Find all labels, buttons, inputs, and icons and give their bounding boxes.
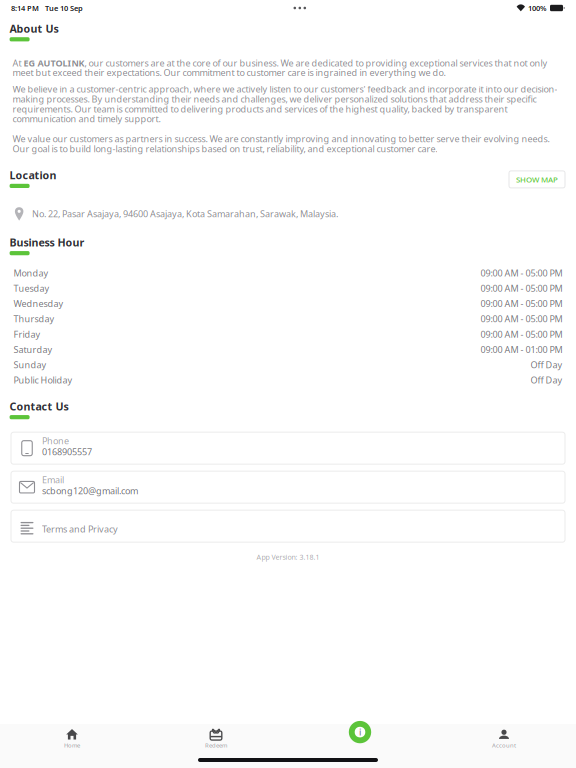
staticText: Tue 10 Sep: [39, 3, 83, 13]
staticText: Phone: [42, 434, 69, 447]
button[interactable]: Home: [0, 724, 144, 758]
staticText: 8:14 PM: [11, 3, 39, 13]
button[interactable]: Phone: [11, 432, 565, 464]
staticText: Contact Us: [10, 399, 69, 414]
staticText: No. 22, Pasar Asajaya, 94600 Asajaya, Ko…: [32, 208, 338, 220]
staticText: scbong120@gmail.com: [42, 485, 138, 497]
staticText: 100%: [528, 3, 547, 13]
staticText: Location: [10, 168, 57, 182]
button[interactable]: Terms and Privacy: [11, 510, 565, 542]
staticText: 0168905557: [42, 446, 92, 458]
button[interactable]: Email: [11, 471, 565, 503]
staticText: Friday: [13, 328, 40, 340]
staticText: Redeem: [205, 741, 227, 749]
staticText: Off Day: [530, 374, 562, 386]
staticText: Thursday: [13, 313, 54, 325]
staticText: SHOW MAP: [516, 174, 558, 185]
button[interactable]: Account: [432, 724, 576, 758]
staticText: Email: [42, 473, 64, 486]
staticText: Tuesday: [13, 282, 49, 294]
staticText: 09:00 AM - 05:00 PM: [480, 313, 562, 325]
staticText: Off Day: [530, 358, 562, 371]
staticText: 09:00 AM - 05:00 PM: [480, 297, 562, 310]
staticText: 09:00 AM - 05:00 PM: [480, 328, 562, 340]
staticText: 09:00 AM - 05:00 PM: [480, 282, 562, 294]
button[interactable]: Redeem: [144, 724, 288, 758]
staticText: 09:00 AM - 01:00 PM: [480, 343, 562, 355]
staticText: Terms and Privacy: [42, 523, 118, 535]
staticText: We value our customers as partners in su…: [12, 133, 549, 155]
button[interactable]: SHOW MAP: [509, 171, 565, 188]
staticText: Monday: [13, 267, 48, 279]
staticText: We believe in a customer-centric approac…: [12, 83, 557, 125]
staticText: About Us: [10, 21, 59, 36]
staticText: 09:00 AM - 05:00 PM: [480, 267, 562, 279]
staticText: Account: [492, 741, 516, 749]
button[interactable]: Information: [349, 721, 371, 743]
staticText: Home: [64, 741, 80, 749]
staticText: Business Hour: [10, 235, 85, 250]
staticText: At EG AUTOLINK, our customers are at the…: [12, 57, 547, 79]
staticText: Sunday: [13, 358, 46, 371]
staticText: i: [359, 726, 361, 738]
staticText: Wednesday: [13, 297, 63, 310]
staticText: App Version: 3.18.1: [256, 552, 319, 562]
staticText: Saturday: [13, 343, 52, 355]
staticText: Public Holiday: [13, 374, 72, 386]
